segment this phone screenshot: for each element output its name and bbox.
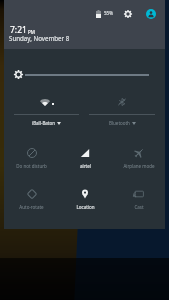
button[interactable]: Cast: [112, 176, 166, 217]
staticText: Auto-rotate: [19, 204, 44, 210]
button[interactable]: Auto-rotate: [5, 176, 58, 217]
staticText: airtel: [80, 163, 91, 169]
button[interactable]: User profile: [144, 7, 157, 20]
button[interactable]: Settings: [121, 7, 134, 20]
button[interactable]: Do not disturb: [5, 135, 58, 176]
staticText: Airplane mode: [123, 163, 155, 169]
staticText: Cast: [134, 204, 144, 210]
button[interactable]: Location: [58, 176, 112, 217]
button[interactable]: Bluetooth: [84, 93, 160, 129]
button[interactable]: Brightness: [14, 70, 23, 79]
staticText: PM: [28, 29, 35, 35]
button[interactable]: 7:21: [10, 24, 35, 36]
button[interactable]: Airplane mode: [112, 135, 166, 176]
staticText: Do not disturb: [16, 163, 47, 169]
button[interactable]: Wi-Fi: [9, 93, 84, 129]
staticText: 7:21: [10, 24, 27, 36]
staticText: Location: [76, 204, 95, 210]
staticText: iBall-Baton: [32, 120, 55, 126]
staticText: 55%: [104, 10, 113, 16]
staticText: Bluetooth: [109, 120, 130, 126]
button[interactable]: airtel: [58, 135, 112, 176]
staticText: Sunday, November 8: [9, 34, 70, 42]
